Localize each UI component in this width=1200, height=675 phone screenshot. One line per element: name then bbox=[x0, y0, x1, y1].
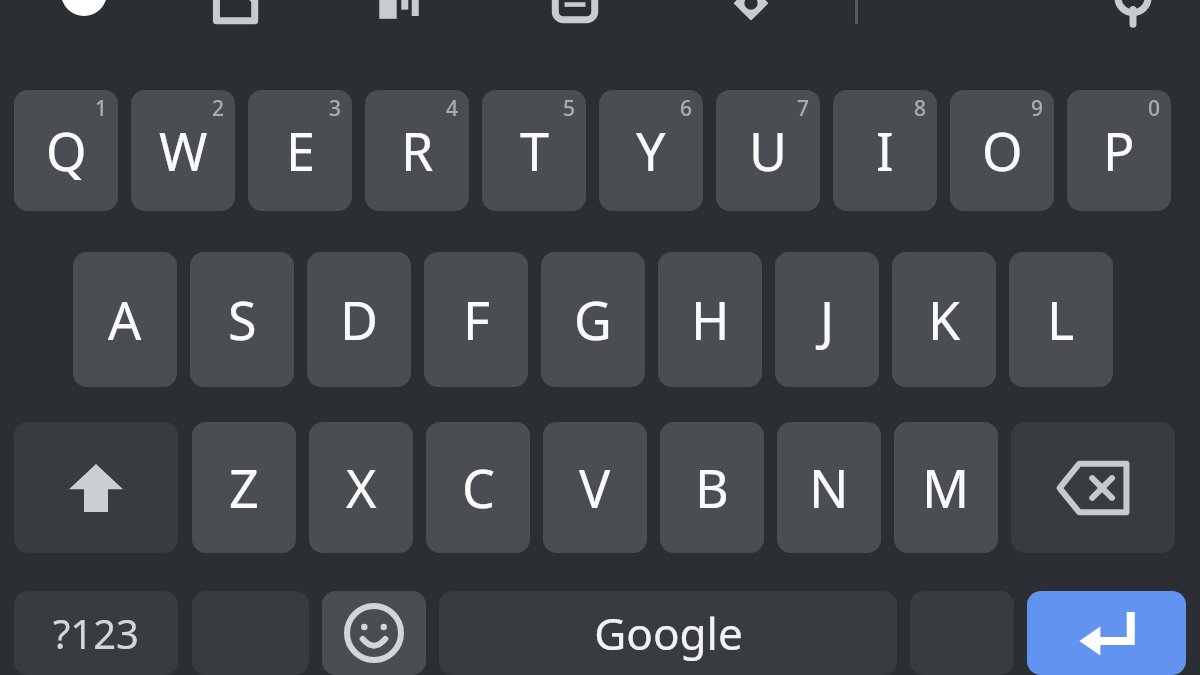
staticText: 2 bbox=[212, 94, 225, 123]
button[interactable]: X bbox=[309, 422, 413, 553]
button[interactable]: W bbox=[131, 90, 235, 211]
staticText: J bbox=[820, 284, 835, 355]
button[interactable]: J bbox=[775, 252, 879, 387]
button[interactable]: Q bbox=[14, 90, 118, 211]
staticText: 8 bbox=[914, 94, 927, 123]
staticText: 4 bbox=[446, 94, 459, 123]
staticText: ?123 bbox=[53, 606, 139, 660]
staticText: F bbox=[463, 284, 490, 355]
staticText: H bbox=[691, 284, 730, 355]
staticText: B bbox=[695, 452, 729, 523]
button[interactable]: P bbox=[1067, 90, 1171, 211]
staticText: 3 bbox=[329, 94, 342, 123]
staticText: U bbox=[749, 115, 788, 186]
staticText: X bbox=[346, 452, 377, 523]
button[interactable]: Text box bbox=[546, 0, 604, 28]
button[interactable]: Z bbox=[192, 422, 296, 553]
button[interactable]: F bbox=[424, 252, 528, 387]
button[interactable]: O bbox=[950, 90, 1054, 211]
button[interactable]: Settings bbox=[722, 0, 780, 28]
staticText: 0 bbox=[1148, 94, 1161, 123]
button[interactable]: R bbox=[365, 90, 469, 211]
button[interactable]: S bbox=[190, 252, 294, 387]
button[interactable]: I bbox=[833, 90, 937, 211]
staticText: N bbox=[809, 452, 849, 523]
staticText: 9 bbox=[1031, 94, 1044, 123]
staticText: Y bbox=[636, 115, 666, 186]
button[interactable]: A bbox=[73, 252, 177, 387]
staticText: 6 bbox=[680, 94, 693, 123]
staticText: E bbox=[286, 115, 315, 186]
button[interactable]: B bbox=[660, 422, 764, 553]
staticText: W bbox=[159, 115, 208, 186]
staticText: Z bbox=[229, 452, 259, 523]
staticText: Google bbox=[594, 603, 743, 663]
staticText: R bbox=[401, 115, 434, 186]
button[interactable]: Emoji bbox=[322, 591, 426, 675]
button[interactable]: M bbox=[894, 422, 998, 553]
staticText: V bbox=[579, 452, 611, 523]
staticText: P bbox=[1103, 115, 1135, 186]
staticText: I bbox=[876, 115, 894, 186]
staticText: S bbox=[228, 284, 257, 355]
button[interactable]: V bbox=[543, 422, 647, 553]
button[interactable]: Sticker bbox=[370, 0, 428, 28]
staticText: K bbox=[928, 284, 961, 355]
button[interactable]: C bbox=[426, 422, 530, 553]
button[interactable]: ?123 bbox=[14, 591, 178, 675]
button[interactable]: Clipboard bbox=[206, 0, 264, 28]
button[interactable]: E bbox=[248, 90, 352, 211]
button[interactable]: N bbox=[777, 422, 881, 553]
button[interactable]: Google bbox=[38, 0, 130, 16]
staticText: M bbox=[922, 452, 970, 523]
button[interactable]: Backspace bbox=[1011, 422, 1175, 553]
button[interactable]: Y bbox=[599, 90, 703, 211]
staticText: Q bbox=[46, 115, 87, 186]
button[interactable]: Shift bbox=[14, 422, 178, 553]
button[interactable]: Enter bbox=[1027, 591, 1186, 675]
button[interactable]: T bbox=[482, 90, 586, 211]
staticText: A bbox=[108, 284, 142, 355]
button[interactable]: K bbox=[892, 252, 996, 387]
button[interactable]: L bbox=[1009, 252, 1113, 387]
button[interactable]: U bbox=[716, 90, 820, 211]
button[interactable]: G bbox=[541, 252, 645, 387]
staticText: D bbox=[340, 284, 378, 355]
staticText: G bbox=[574, 284, 612, 355]
button[interactable]: H bbox=[658, 252, 762, 387]
staticText: O bbox=[982, 115, 1023, 186]
staticText: 1 bbox=[95, 94, 108, 123]
button[interactable]: Search bbox=[1104, 0, 1162, 28]
staticText: L bbox=[1047, 284, 1075, 355]
staticText: T bbox=[520, 115, 549, 186]
staticText: 7 bbox=[797, 94, 810, 123]
staticText: 5 bbox=[563, 94, 576, 123]
button[interactable]: Space bbox=[439, 591, 897, 675]
button[interactable]: D bbox=[307, 252, 411, 387]
staticText: C bbox=[462, 452, 495, 523]
